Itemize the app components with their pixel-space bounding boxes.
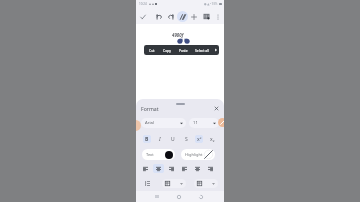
button[interactable]: Text (142, 149, 175, 160)
button[interactable]: Line spacing (141, 179, 153, 188)
button[interactable]: Done (137, 11, 148, 22)
staticText: Select all (195, 48, 209, 53)
button[interactable]: Select all (191, 45, 212, 55)
button[interactable]: 11 (189, 118, 219, 128)
button[interactable]: Redo (165, 11, 176, 22)
staticText: S (185, 136, 188, 143)
button[interactable]: Alignment option 6 (205, 164, 216, 173)
staticText: Arial (145, 120, 154, 126)
button[interactable]: Alignment option 4 (179, 164, 190, 173)
staticText: 11 (193, 120, 198, 126)
staticText: ● ▲ • 93% (204, 2, 218, 6)
button[interactable]: Alignment option 1 (140, 164, 151, 173)
button[interactable]: Insert (188, 11, 199, 22)
staticText: Text (146, 152, 154, 157)
button[interactable]: Close (212, 104, 220, 112)
button[interactable]: Table (201, 11, 212, 22)
button[interactable]: List style (162, 179, 186, 188)
button[interactable]: Copy (159, 45, 175, 55)
button[interactable]: Undo (153, 11, 164, 22)
button[interactable]: Highlight (181, 149, 215, 160)
staticText: Cut (149, 48, 155, 53)
staticText: x₂ (210, 136, 215, 143)
button[interactable]: More options (212, 11, 223, 22)
staticText: 10:24 (139, 2, 147, 6)
staticText: x² (197, 136, 202, 143)
button[interactable]: U (169, 135, 177, 143)
button[interactable]: Home (173, 191, 185, 202)
button[interactable]: Back (195, 191, 207, 202)
staticText: Highlight (185, 152, 203, 157)
button[interactable]: More (212, 45, 219, 55)
staticText: Copy (163, 48, 171, 53)
button[interactable]: Alignment option 3 (166, 164, 177, 173)
button[interactable]: Alignment option 2 (153, 164, 164, 173)
button[interactable]: sub (208, 135, 216, 143)
button[interactable]: S (182, 135, 190, 143)
staticText: Format (141, 105, 159, 112)
button[interactable]: sup (195, 135, 203, 143)
button[interactable]: I (156, 135, 164, 143)
button[interactable]: Cut (144, 45, 159, 55)
button[interactable]: List style (194, 179, 218, 188)
staticText: U (171, 136, 175, 143)
button[interactable]: Arial (141, 118, 186, 128)
button[interactable]: Recent apps (151, 191, 163, 202)
staticText: I (159, 136, 161, 143)
staticText: B (145, 136, 149, 143)
button[interactable]: Alignment option 5 (192, 164, 203, 173)
button[interactable]: B (143, 135, 151, 143)
button[interactable]: Text formatting (177, 11, 188, 22)
staticText: 4900f (172, 32, 184, 38)
staticText: Paste (179, 48, 188, 53)
button[interactable]: Paste (175, 45, 191, 55)
